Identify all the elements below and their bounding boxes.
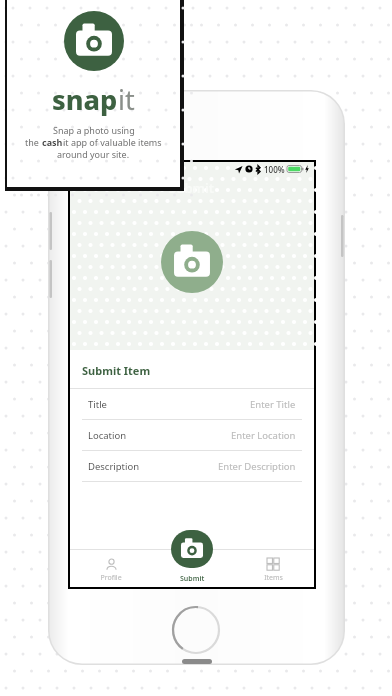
staticText: Submit Item	[82, 363, 151, 378]
staticText: it	[118, 81, 135, 118]
button[interactable]: Take photo	[161, 231, 223, 293]
staticText: around your site.	[57, 148, 130, 160]
button[interactable]: Submit photo	[171, 530, 213, 568]
staticText: Profile	[100, 573, 122, 583]
staticText: Submit	[169, 179, 215, 197]
staticText: Submit	[180, 574, 205, 584]
staticText: Items	[264, 573, 283, 583]
button[interactable]: Profile	[70, 550, 152, 588]
staticText: 100%	[264, 164, 285, 175]
button[interactable]: Title	[70, 389, 314, 419]
staticText: it app of valuable items	[63, 136, 162, 148]
staticText: Enter Description	[218, 460, 296, 473]
other: Profile	[105, 558, 118, 571]
button[interactable]: Items	[233, 550, 314, 588]
staticText: Snap a photo using	[53, 124, 135, 136]
staticText: snap	[52, 81, 118, 118]
button[interactable]: Description	[70, 451, 314, 481]
staticText: Enter Title	[250, 398, 296, 411]
button[interactable]: Location	[70, 420, 314, 450]
other: Items	[267, 558, 280, 571]
staticText: Title	[88, 398, 107, 411]
staticText: Description	[88, 460, 140, 473]
staticText: the	[25, 136, 42, 148]
staticText: Enter Location	[231, 429, 296, 442]
staticText: cash	[42, 136, 63, 148]
staticText: Location	[88, 429, 127, 442]
